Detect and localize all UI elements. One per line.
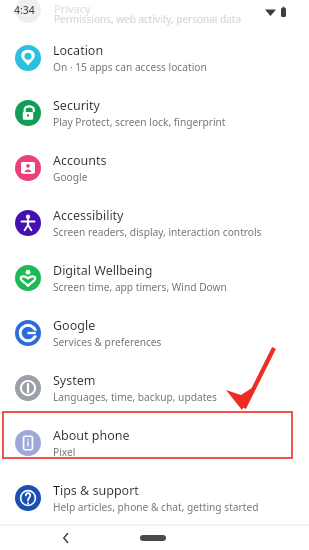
staticText: Privacy: [54, 1, 91, 16]
button[interactable]: Home: [131, 529, 175, 547]
button[interactable]: Security: [0, 85, 309, 140]
button[interactable]: Back: [52, 525, 80, 550]
staticText: Play Protect, screen lock, fingerprint: [53, 115, 226, 129]
button[interactable]: System: [0, 360, 309, 415]
staticText: 4:34: [14, 3, 35, 17]
staticText: Screen time, app timers, Wind Down: [53, 280, 227, 294]
staticText: Google: [53, 170, 88, 184]
staticText: Permissions, web activity, personal data: [54, 12, 242, 26]
staticText: Services & preferences: [53, 335, 162, 349]
staticText: On · 15 apps can access location: [53, 60, 207, 74]
staticText: System: [53, 372, 96, 389]
staticText: Help articles, phone & chat, getting sta…: [53, 500, 259, 514]
staticText: Accessibility: [53, 207, 124, 224]
staticText: Languages, time, backup, updates: [53, 390, 217, 404]
button[interactable]: Google: [0, 305, 309, 360]
staticText: Accounts: [53, 152, 107, 169]
staticText: Pixel: [53, 445, 76, 459]
staticText: Security: [53, 97, 100, 114]
staticText: About phone: [53, 427, 130, 444]
button[interactable]: Digital Wellbeing: [0, 250, 309, 305]
staticText: Location: [53, 42, 104, 59]
button[interactable]: Accounts: [0, 140, 309, 195]
staticText: Digital Wellbeing: [53, 262, 153, 279]
button[interactable]: Tips & support: [0, 470, 309, 525]
staticText: Tips & support: [53, 482, 139, 499]
staticText: Screen readers, display, interaction con…: [53, 225, 262, 239]
staticText: Google: [53, 317, 96, 334]
button[interactable]: Location: [0, 30, 309, 85]
button[interactable]: Accessibility: [0, 195, 309, 250]
button[interactable]: About phone: [0, 415, 309, 470]
